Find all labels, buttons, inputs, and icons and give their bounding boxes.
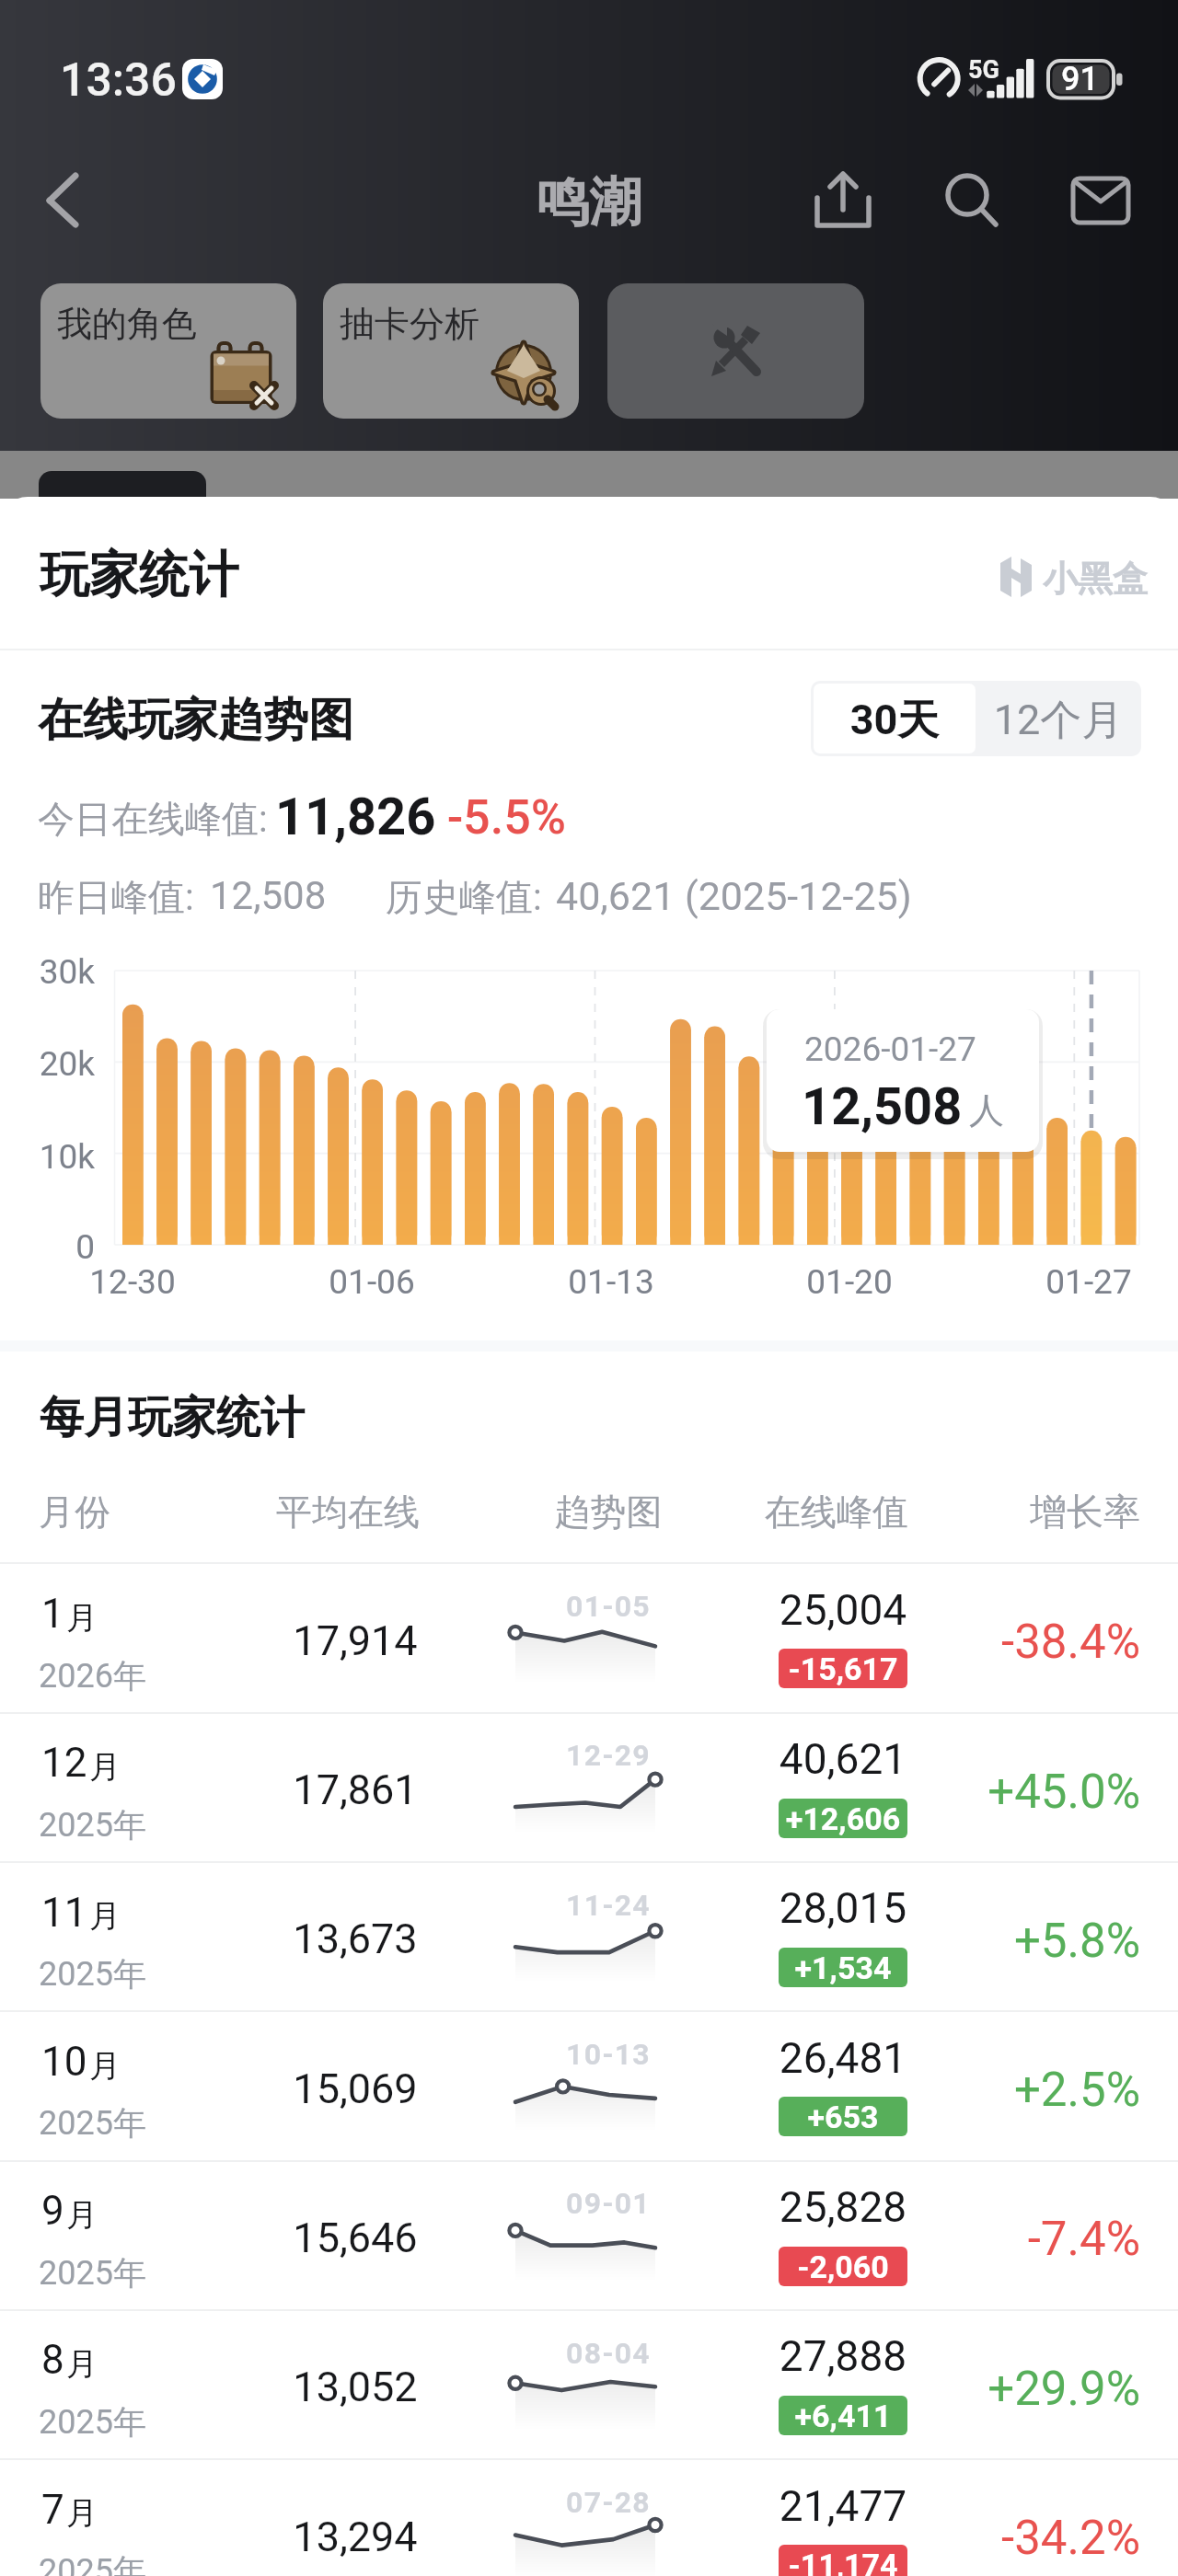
staticText: 17,914 bbox=[265, 1616, 445, 1665]
staticText: 今日在线峰值: bbox=[38, 796, 268, 842]
staticText: 2025年 bbox=[39, 2102, 146, 2144]
staticText: 25,004 bbox=[753, 1585, 933, 1635]
staticText: 2025年 bbox=[39, 1804, 146, 1846]
staticText: 13:36 bbox=[60, 53, 177, 108]
staticText: 01-05 bbox=[516, 1589, 700, 1624]
staticText: 10 bbox=[41, 2038, 87, 2086]
button[interactable]: Share bbox=[803, 161, 883, 240]
staticText: 9 bbox=[41, 2187, 64, 2235]
button[interactable]: 我的角色 bbox=[40, 283, 296, 419]
staticText: 11-24 bbox=[516, 1888, 700, 1923]
staticText: 月 bbox=[89, 1747, 121, 1787]
staticText: 20k bbox=[0, 1044, 95, 1084]
staticText: 0 bbox=[0, 1227, 95, 1267]
button[interactable]: 9月 2025年 bbox=[0, 2160, 1178, 2309]
staticText: -38.4% bbox=[919, 1615, 1140, 1670]
staticText: 07-28 bbox=[516, 2485, 700, 2520]
staticText: 2025年 bbox=[39, 2401, 146, 2443]
staticText: +29.9% bbox=[919, 2362, 1140, 2417]
staticText: 2025年 bbox=[39, 1953, 146, 1995]
button[interactable]: 7月 2025年 bbox=[0, 2458, 1178, 2576]
staticText: 在线玩家趋势图 bbox=[38, 692, 353, 749]
staticText: 2026-01-27 bbox=[804, 1029, 976, 1069]
staticText: 月份 bbox=[39, 1489, 110, 1535]
button[interactable]: 抽卡分析 bbox=[323, 283, 579, 419]
staticText: 月 bbox=[66, 1598, 98, 1638]
staticText: 11,826 bbox=[275, 787, 436, 847]
staticText: 21,477 bbox=[753, 2481, 933, 2531]
staticText: 91 bbox=[1048, 60, 1112, 98]
staticText: 8 bbox=[41, 2336, 64, 2384]
staticText: -7.4% bbox=[919, 2212, 1140, 2267]
staticText: +12,606 bbox=[779, 1800, 907, 1837]
staticText: 26,481 bbox=[753, 2033, 933, 2083]
staticText: 27,888 bbox=[753, 2331, 933, 2381]
staticText: 月 bbox=[66, 2493, 98, 2533]
staticText: 25,828 bbox=[753, 2182, 933, 2232]
staticText: 40,621 bbox=[753, 1734, 933, 1784]
staticText: 月 bbox=[89, 1896, 121, 1936]
staticText: 12,508 bbox=[210, 873, 327, 918]
staticText: +6,411 bbox=[779, 2398, 907, 2434]
staticText: 2026年 bbox=[39, 1655, 146, 1696]
staticText: 每月玩家统计 bbox=[40, 1390, 305, 1445]
staticText: +5.8% bbox=[919, 1914, 1140, 1969]
staticText: 小黑盒 bbox=[1043, 557, 1148, 601]
staticText: 17,861 bbox=[265, 1765, 445, 1814]
button[interactable]: 30天 bbox=[814, 684, 976, 753]
staticText: 增长率 bbox=[920, 1489, 1140, 1535]
staticText: 12-30 bbox=[50, 1262, 215, 1302]
staticText: -15,617 bbox=[779, 1650, 907, 1687]
staticText: 15,646 bbox=[265, 2214, 445, 2262]
button[interactable]: Tools bbox=[607, 283, 864, 419]
button[interactable]: Search bbox=[932, 161, 1011, 240]
staticText: +45.0% bbox=[919, 1765, 1140, 1820]
staticText: 09-01 bbox=[516, 2186, 700, 2221]
button[interactable]: 10月 2025年 bbox=[0, 2010, 1178, 2159]
staticText: 抽卡分析 bbox=[340, 302, 479, 346]
staticText: -2,060 bbox=[779, 2248, 907, 2285]
staticText: 12,508 bbox=[802, 1076, 963, 1137]
staticText: 月 bbox=[66, 2344, 98, 2384]
staticText: 昨日峰值: bbox=[38, 874, 194, 920]
staticText: 01-20 bbox=[767, 1262, 932, 1302]
button[interactable]: 12个月 bbox=[976, 681, 1141, 756]
staticText: +653 bbox=[779, 2099, 907, 2135]
staticText: 12个月 bbox=[976, 695, 1141, 747]
staticText: 趋势图 bbox=[518, 1489, 699, 1535]
button[interactable]: 12月 2025年 bbox=[0, 1712, 1178, 1861]
staticText: 40,621 (2025-12-25) bbox=[556, 873, 912, 919]
staticText: +2.5% bbox=[919, 2063, 1140, 2118]
staticText: 13,294 bbox=[265, 2513, 445, 2561]
staticText: -11,174 bbox=[779, 2547, 907, 2576]
staticText: 月 bbox=[89, 2046, 121, 2086]
staticText: 历史峰值: bbox=[386, 874, 542, 920]
staticText: 10-13 bbox=[516, 2037, 700, 2072]
staticText: 30天 bbox=[814, 695, 976, 747]
staticText: 08-04 bbox=[516, 2336, 700, 2371]
staticText: 1 bbox=[41, 1590, 64, 1638]
staticText: 28,015 bbox=[753, 1883, 933, 1933]
staticText: 13,052 bbox=[265, 2363, 445, 2411]
staticText: 01-13 bbox=[528, 1262, 694, 1302]
button[interactable]: Back bbox=[18, 158, 101, 243]
staticText: 13,673 bbox=[265, 1915, 445, 1963]
staticText: 10k bbox=[0, 1137, 95, 1177]
staticText: 在线峰值 bbox=[746, 1489, 927, 1535]
staticText: 01-06 bbox=[289, 1262, 455, 1302]
staticText: 人 bbox=[969, 1088, 1004, 1133]
staticText: 30k bbox=[0, 952, 95, 992]
staticText: 5G bbox=[968, 55, 999, 85]
staticText: 月 bbox=[66, 2195, 98, 2235]
button[interactable]: Messages bbox=[1061, 161, 1140, 240]
button[interactable]: 8月 2025年 bbox=[0, 2309, 1178, 2458]
staticText: 12-29 bbox=[516, 1738, 700, 1773]
staticText: 2025年 bbox=[39, 2252, 146, 2294]
button[interactable]: 1月 2026年 bbox=[0, 1562, 1178, 1711]
button[interactable]: 11月 2025年 bbox=[0, 1861, 1178, 2010]
staticText: 鸣潮 bbox=[537, 169, 641, 236]
staticText: 01-27 bbox=[1006, 1262, 1172, 1302]
staticText: 2025年 bbox=[39, 2550, 146, 2576]
staticText: 7 bbox=[41, 2486, 64, 2534]
staticText: 我的角色 bbox=[57, 302, 197, 346]
